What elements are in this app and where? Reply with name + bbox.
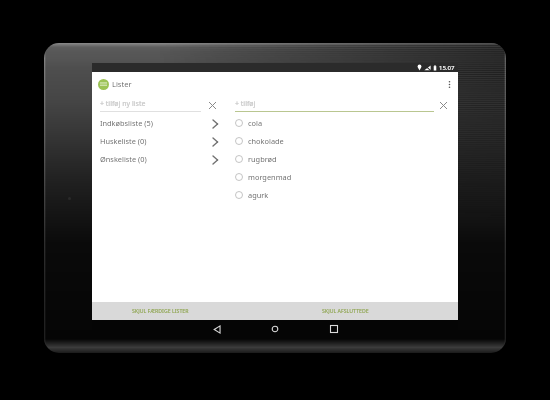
button[interactable]: rugbrød: [235, 150, 449, 168]
button[interactable]: cola: [235, 114, 449, 132]
button[interactable]: Home: [266, 320, 284, 338]
staticText: Lister: [112, 79, 132, 89]
staticText: Indkøbsliste (5): [100, 118, 153, 128]
button[interactable]: agurk: [235, 186, 449, 204]
button[interactable]: SKJUL AFSLUTTEDE: [285, 301, 405, 319]
button[interactable]: Recent apps: [325, 320, 343, 338]
button[interactable]: Clear: [437, 99, 449, 111]
button[interactable]: Clear: [206, 99, 218, 111]
staticText: Ønskeliste (0): [100, 154, 147, 164]
staticText: cola: [248, 118, 263, 128]
button[interactable]: Ønskeliste (0): [100, 150, 222, 168]
staticText: morgenmad: [248, 172, 292, 182]
staticText: rugbrød: [248, 154, 277, 164]
staticText: Huskeliste (0): [100, 136, 147, 146]
staticText: SKJUL FÆRDIGE LISTER: [132, 307, 189, 314]
staticText: SKJUL AFSLUTTEDE: [322, 307, 369, 314]
staticText: chokolade: [248, 136, 284, 146]
staticText: + tilføj ny liste: [100, 99, 146, 109]
button[interactable]: SKJUL FÆRDIGE LISTER: [100, 301, 220, 319]
button[interactable]: morgenmad: [235, 168, 449, 186]
button[interactable]: Back: [208, 320, 226, 338]
button[interactable]: Huskeliste (0): [100, 132, 222, 150]
staticText: 15.07: [439, 64, 455, 72]
staticText: + tilføj: [235, 99, 256, 109]
button[interactable]: chokolade: [235, 132, 449, 150]
staticText: agurk: [248, 190, 269, 200]
button[interactable]: Indkøbsliste (5): [100, 114, 222, 132]
button[interactable]: More options: [441, 76, 457, 92]
